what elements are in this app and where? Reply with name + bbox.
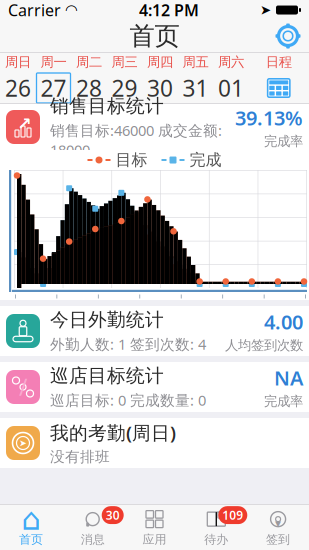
staticText: ▾	[275, 516, 281, 530]
staticText: 完成	[189, 150, 221, 170]
staticText: 30	[106, 507, 120, 523]
button[interactable]: 今日外勤统计	[0, 306, 309, 356]
staticText: 首页	[19, 532, 43, 547]
staticText: 28	[76, 73, 102, 103]
staticText: 消息	[81, 532, 105, 547]
staticText: ➤	[260, 2, 271, 17]
staticText: ◠	[65, 2, 78, 18]
staticText: 应用	[142, 532, 166, 547]
staticText: ↗	[17, 114, 32, 133]
staticText: ⌂	[21, 502, 40, 536]
button[interactable]: ↗	[0, 104, 309, 150]
staticText: 周四	[147, 54, 173, 70]
button[interactable]: 109	[185, 505, 247, 549]
staticText: NA	[274, 364, 303, 391]
button[interactable]: 日程	[249, 72, 309, 104]
button[interactable]: ➤	[0, 418, 309, 468]
staticText: 周五	[182, 54, 208, 70]
button[interactable]: 设置	[271, 19, 305, 53]
staticText: 我的考勤(周日)	[50, 420, 176, 445]
staticText: 销售目标:46000 成交金额:18000	[50, 120, 222, 159]
staticText: 周二	[76, 54, 102, 70]
staticText: 人均签到次数	[225, 337, 303, 353]
staticText: 待办	[204, 532, 228, 547]
button[interactable]: 应用	[124, 505, 185, 549]
button[interactable]: /	[0, 362, 309, 412]
staticText: 30	[147, 73, 173, 103]
staticText: 日程	[266, 54, 292, 70]
button[interactable]: 31	[178, 72, 213, 104]
staticText: 4.00	[264, 308, 303, 335]
staticText: 29	[111, 73, 137, 103]
staticText: 首页	[129, 20, 179, 51]
staticText: 完成率	[264, 393, 303, 409]
staticText: 外勤人数: 1 签到次数: 4	[50, 334, 206, 354]
staticText: 109	[222, 507, 243, 523]
staticText: 没有排班	[50, 448, 110, 466]
staticText: 周日	[5, 54, 31, 70]
staticText: 4:12 PM	[139, 0, 199, 21]
staticText: 巡店目标统计	[50, 364, 164, 387]
staticText: 01	[218, 73, 244, 103]
staticText: 销售目标统计	[50, 95, 164, 117]
staticText: 签到	[266, 532, 290, 547]
button[interactable]: ⌂	[0, 505, 62, 549]
staticText: /	[19, 372, 27, 402]
button[interactable]: 01	[213, 72, 249, 104]
button[interactable]: 29	[107, 72, 142, 104]
button[interactable]: 28	[71, 72, 107, 104]
staticText: 巡店目标: 0 完成数量: 0	[50, 390, 206, 410]
staticText: 周六	[218, 54, 244, 70]
button[interactable]: 26	[0, 72, 36, 104]
staticText: 27	[40, 73, 66, 103]
staticText: 目标	[115, 150, 147, 170]
button[interactable]: ▾	[247, 505, 309, 549]
staticText: 31	[182, 73, 208, 103]
staticText: 39.13%	[235, 104, 303, 131]
staticText: ➤	[19, 438, 27, 448]
button[interactable]: 27	[36, 72, 71, 104]
staticText: 26	[5, 73, 31, 103]
staticText: 今日外勤统计	[50, 308, 164, 331]
staticText: Carrier	[8, 0, 61, 21]
staticText: 周三	[111, 54, 137, 70]
button[interactable]: 30	[142, 72, 178, 104]
button[interactable]: 30	[62, 505, 124, 549]
staticText: 周一	[40, 54, 66, 70]
staticText: 完成率	[264, 133, 303, 149]
